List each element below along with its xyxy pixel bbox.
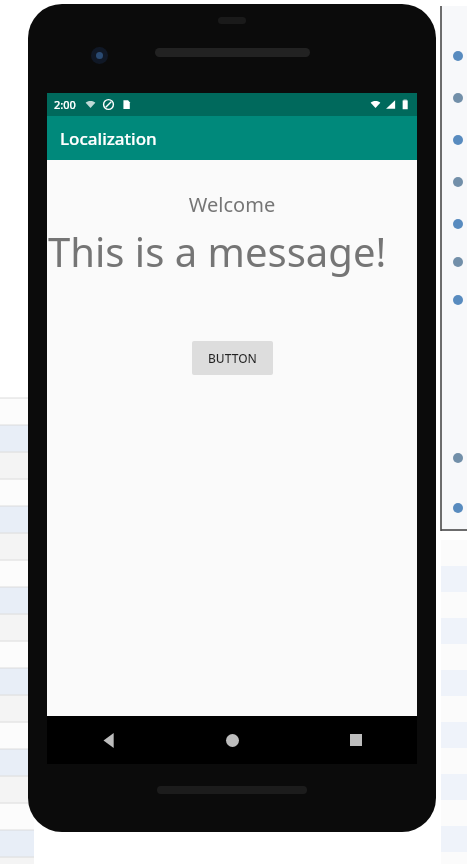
button[interactable]: Back [47, 716, 171, 764]
staticText: Localization [60, 127, 157, 150]
staticText: This is a message! [48, 224, 417, 278]
staticText: Welcome [47, 191, 417, 218]
button[interactable]: Localization [47, 116, 417, 160]
staticText: 2:00 [54, 97, 76, 112]
button[interactable]: Recents [294, 716, 417, 764]
staticText: BUTTON [208, 350, 257, 366]
button[interactable]: Home [171, 716, 294, 764]
button[interactable]: BUTTON [192, 341, 273, 375]
